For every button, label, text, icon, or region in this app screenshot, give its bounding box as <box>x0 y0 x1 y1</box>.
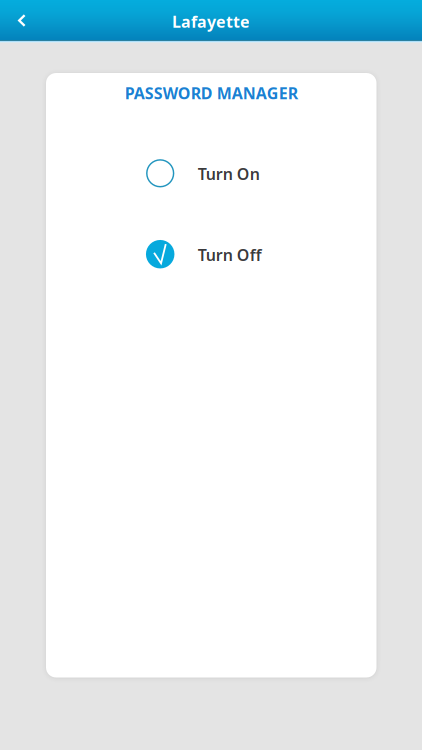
staticText: PASSWORD MANAGER <box>125 82 298 104</box>
staticText: Turn On <box>198 163 260 184</box>
button[interactable]: Turn Off <box>146 235 316 273</box>
button[interactable]: Turn On <box>146 154 316 192</box>
staticText: Turn Off <box>198 244 262 265</box>
staticText: Lafayette <box>172 11 250 32</box>
button[interactable]: Back <box>0 0 48 40</box>
